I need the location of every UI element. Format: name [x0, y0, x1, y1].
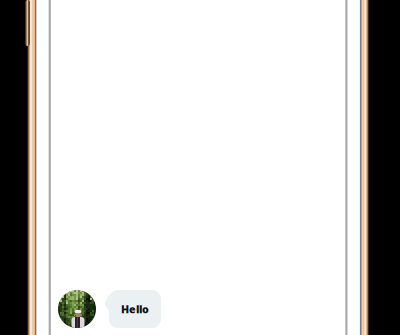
- staticText: Hello: [121, 302, 149, 316]
- button[interactable]: Message from contact: Hello: [58, 290, 359, 328]
